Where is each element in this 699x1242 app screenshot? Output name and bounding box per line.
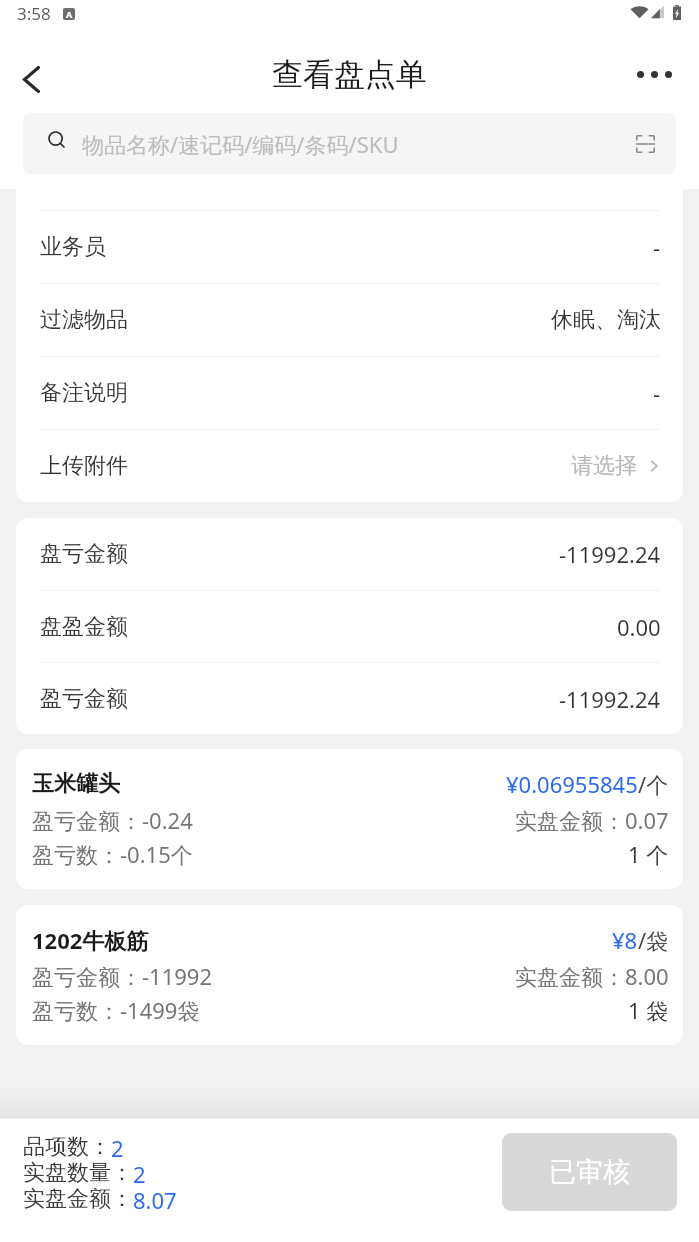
staticText: 品项数： (23, 1133, 111, 1159)
button[interactable]: Back (5, 55, 57, 103)
staticText: ¥8 (612, 925, 638, 955)
button[interactable]: Scan barcode (628, 127, 662, 161)
staticText: 查看盘点单 (272, 55, 427, 94)
staticText: 盘盈金额 (40, 613, 128, 641)
staticText: 盈亏数：-1499袋 (32, 995, 200, 1025)
staticText: 2 (133, 1159, 146, 1185)
staticText: 上传附件 (40, 452, 128, 480)
button[interactable]: 盘盈金额 (16, 591, 683, 662)
staticText: 盘亏金额 (40, 540, 128, 568)
staticText: 1 个 (628, 839, 669, 869)
staticText: -11992.24 (559, 684, 661, 714)
staticText: 8.07 (133, 1185, 177, 1211)
staticText: -11992.24 (559, 539, 661, 569)
staticText: 休眠、淘汰 (551, 306, 661, 334)
staticText: 备注说明 (40, 379, 128, 407)
staticText: 1202牛板筋 (32, 925, 149, 955)
staticText: ¥0.06955845 (506, 769, 638, 799)
staticText: - (653, 378, 661, 408)
staticText: 请选择 (571, 452, 637, 480)
button[interactable]: 过滤物品 (16, 284, 683, 356)
staticText: 物品名称/速记码/编码/条码/SKU (82, 129, 399, 159)
staticText: 实盘金额： (23, 1185, 133, 1211)
staticText: 2 (111, 1133, 124, 1159)
staticText: 盈亏金额 (40, 685, 128, 713)
button[interactable]: 玉米罐头 (16, 749, 683, 889)
staticText: 已审核 (549, 1155, 630, 1189)
button[interactable]: 盈亏金额 (16, 663, 683, 734)
button[interactable]: 备注说明 (16, 357, 683, 429)
button[interactable]: 盘亏金额 (16, 518, 683, 590)
button[interactable]: 已审核 (502, 1133, 677, 1211)
staticText: 业务员 (40, 233, 106, 261)
staticText: 3:58 (17, 2, 51, 25)
staticText: 1 袋 (628, 995, 669, 1025)
staticText: /袋 (638, 925, 669, 955)
staticText: 盈亏数：-0.15个 (32, 839, 193, 869)
button[interactable]: 物品名称/速记码/编码/条码/SKU (23, 113, 676, 174)
staticText: 实盘数量： (23, 1159, 133, 1185)
button[interactable]: 上传附件 (16, 430, 683, 502)
staticText: 玉米罐头 (32, 770, 120, 798)
staticText: 盈亏金额：-0.24 (32, 805, 193, 835)
button[interactable]: 业务员 (16, 211, 683, 283)
staticText: 盈亏金额：-11992 (32, 961, 213, 991)
staticText: 实盘金额：0.07 (515, 805, 669, 835)
button[interactable]: 1202牛板筋 (16, 905, 683, 1045)
staticText: - (653, 232, 661, 262)
staticText: /个 (638, 769, 669, 799)
staticText: 过滤物品 (40, 306, 128, 334)
staticText: 0.00 (617, 612, 661, 642)
staticText: A (66, 8, 73, 20)
button[interactable]: More options (630, 50, 678, 98)
staticText: 实盘金额：8.00 (515, 961, 669, 991)
